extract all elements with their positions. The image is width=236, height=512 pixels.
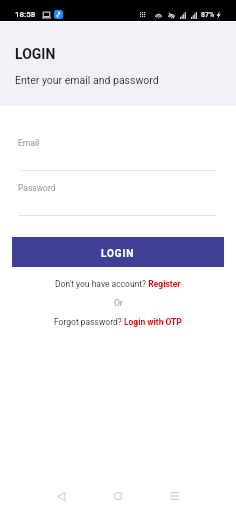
staticText: Don't you have account? Register xyxy=(55,279,181,289)
staticText: LOGIN xyxy=(101,248,135,260)
staticText: LOGIN xyxy=(15,46,56,62)
staticText: Enter your email and password xyxy=(15,74,159,86)
staticText: Email xyxy=(18,138,40,148)
button[interactable]: Home xyxy=(103,481,133,511)
staticText: 18:58 xyxy=(15,10,36,19)
staticText: Forgot password? Login with OTP xyxy=(54,317,182,327)
button[interactable]: Password xyxy=(0,183,236,216)
staticText: 87% xyxy=(201,11,215,19)
button[interactable]: Back xyxy=(46,481,76,511)
button[interactable]: Email xyxy=(0,138,236,171)
button[interactable]: Don't you have account? Register xyxy=(0,279,236,289)
button[interactable]: Forgot password? Login with OTP xyxy=(0,317,236,327)
staticText: Or xyxy=(114,298,123,308)
button[interactable]: LOGIN xyxy=(12,237,224,267)
staticText: Password xyxy=(18,183,56,193)
button[interactable]: Recent apps xyxy=(159,481,189,511)
